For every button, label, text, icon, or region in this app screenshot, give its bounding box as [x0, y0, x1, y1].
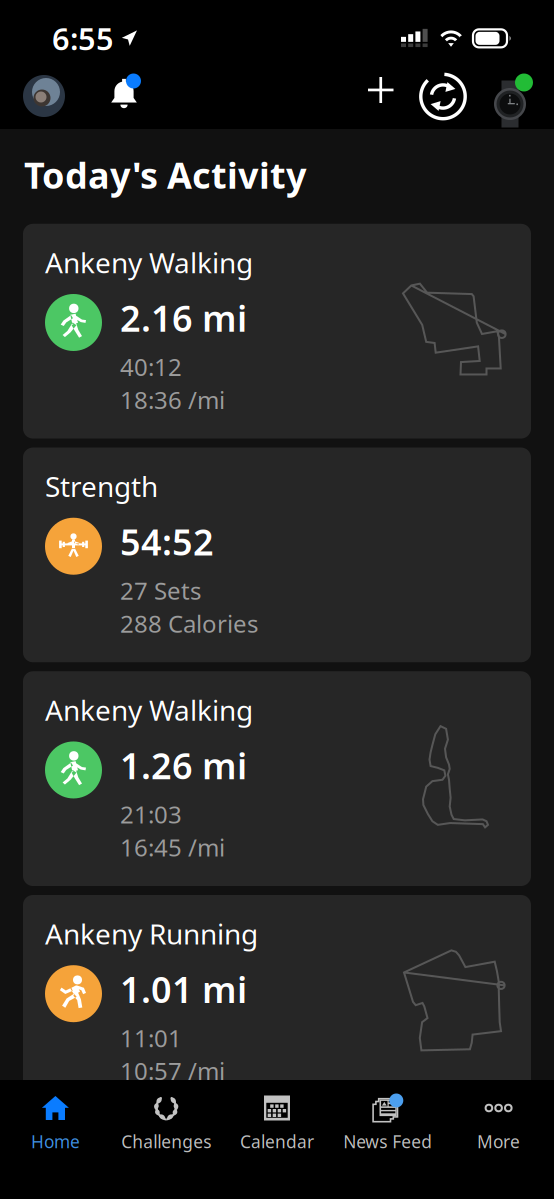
- staticText: Home: [31, 1130, 80, 1153]
- staticText: 288 Calories: [120, 607, 258, 639]
- staticText: 6:55: [52, 18, 114, 59]
- staticText: 2.16 mi: [120, 294, 247, 342]
- button[interactable]: News Feed: [332, 1080, 443, 1199]
- button[interactable]: Sync: [418, 72, 468, 126]
- button[interactable]: Home: [0, 1080, 111, 1199]
- button[interactable]: Ankeny Walking: [23, 224, 531, 438]
- staticText: More: [477, 1130, 520, 1153]
- staticText: Challenges: [121, 1130, 211, 1153]
- staticText: Ankeny Running: [45, 915, 258, 952]
- button[interactable]: Challenges: [111, 1080, 222, 1199]
- staticText: 10:57 /mi: [120, 1055, 225, 1087]
- staticText: 1.26 mi: [120, 741, 247, 789]
- staticText: Ankeny Walking: [45, 691, 253, 728]
- staticText: Today's Activity: [24, 151, 307, 199]
- button[interactable]: Ankeny Running: [23, 895, 531, 1110]
- button[interactable]: More: [443, 1080, 554, 1199]
- button[interactable]: Ankeny Walking: [23, 671, 531, 886]
- staticText: Ankeny Walking: [45, 244, 253, 281]
- staticText: 40:12: [120, 351, 182, 383]
- button[interactable]: Strength: [23, 447, 531, 662]
- staticText: 21:03: [120, 798, 182, 830]
- staticText: 18:36 /mi: [120, 384, 225, 416]
- button[interactable]: Notifications: [109, 71, 141, 127]
- staticText: 16:45 /mi: [120, 831, 225, 863]
- staticText: Strength: [45, 467, 158, 505]
- staticText: 1.01 mi: [120, 965, 247, 1013]
- button[interactable]: Add activity: [368, 68, 394, 131]
- button[interactable]: Connected device: [494, 71, 533, 127]
- staticText: 11:01: [120, 1022, 182, 1054]
- button[interactable]: Profile: [23, 70, 65, 129]
- staticText: News Feed: [343, 1130, 432, 1153]
- staticText: 27 Sets: [120, 574, 201, 606]
- staticText: 54:52: [120, 518, 214, 565]
- staticText: Calendar: [240, 1130, 314, 1153]
- button[interactable]: Calendar: [222, 1080, 332, 1199]
